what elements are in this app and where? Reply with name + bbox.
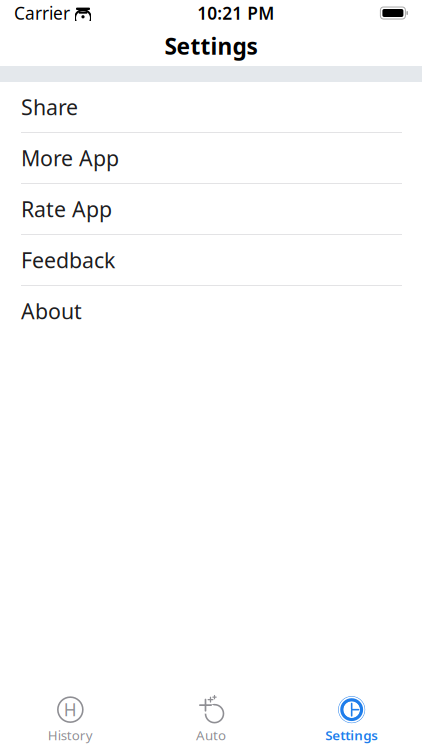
staticText: Carrier — [14, 1, 70, 24]
button[interactable]: Rate App — [0, 184, 422, 235]
staticText: Share — [21, 93, 78, 121]
button[interactable]: More App — [0, 133, 422, 184]
button[interactable]: Settings — [281, 695, 422, 745]
staticText: H — [64, 698, 77, 721]
staticText: About — [21, 297, 82, 325]
button[interactable]: About — [0, 286, 422, 337]
button[interactable]: Auto — [141, 695, 281, 745]
staticText: Auto — [196, 726, 226, 744]
staticText: 10:21 PM — [197, 1, 274, 24]
button[interactable]: History — [0, 695, 141, 745]
staticText: Feedback — [21, 246, 115, 274]
staticText: Settings — [164, 31, 257, 61]
button[interactable]: Share — [0, 82, 422, 133]
staticText: Rate App — [21, 195, 112, 223]
staticText: History — [48, 726, 93, 744]
button[interactable]: Feedback — [0, 235, 422, 286]
staticText: Settings — [325, 726, 378, 744]
staticText: More App — [21, 144, 119, 172]
